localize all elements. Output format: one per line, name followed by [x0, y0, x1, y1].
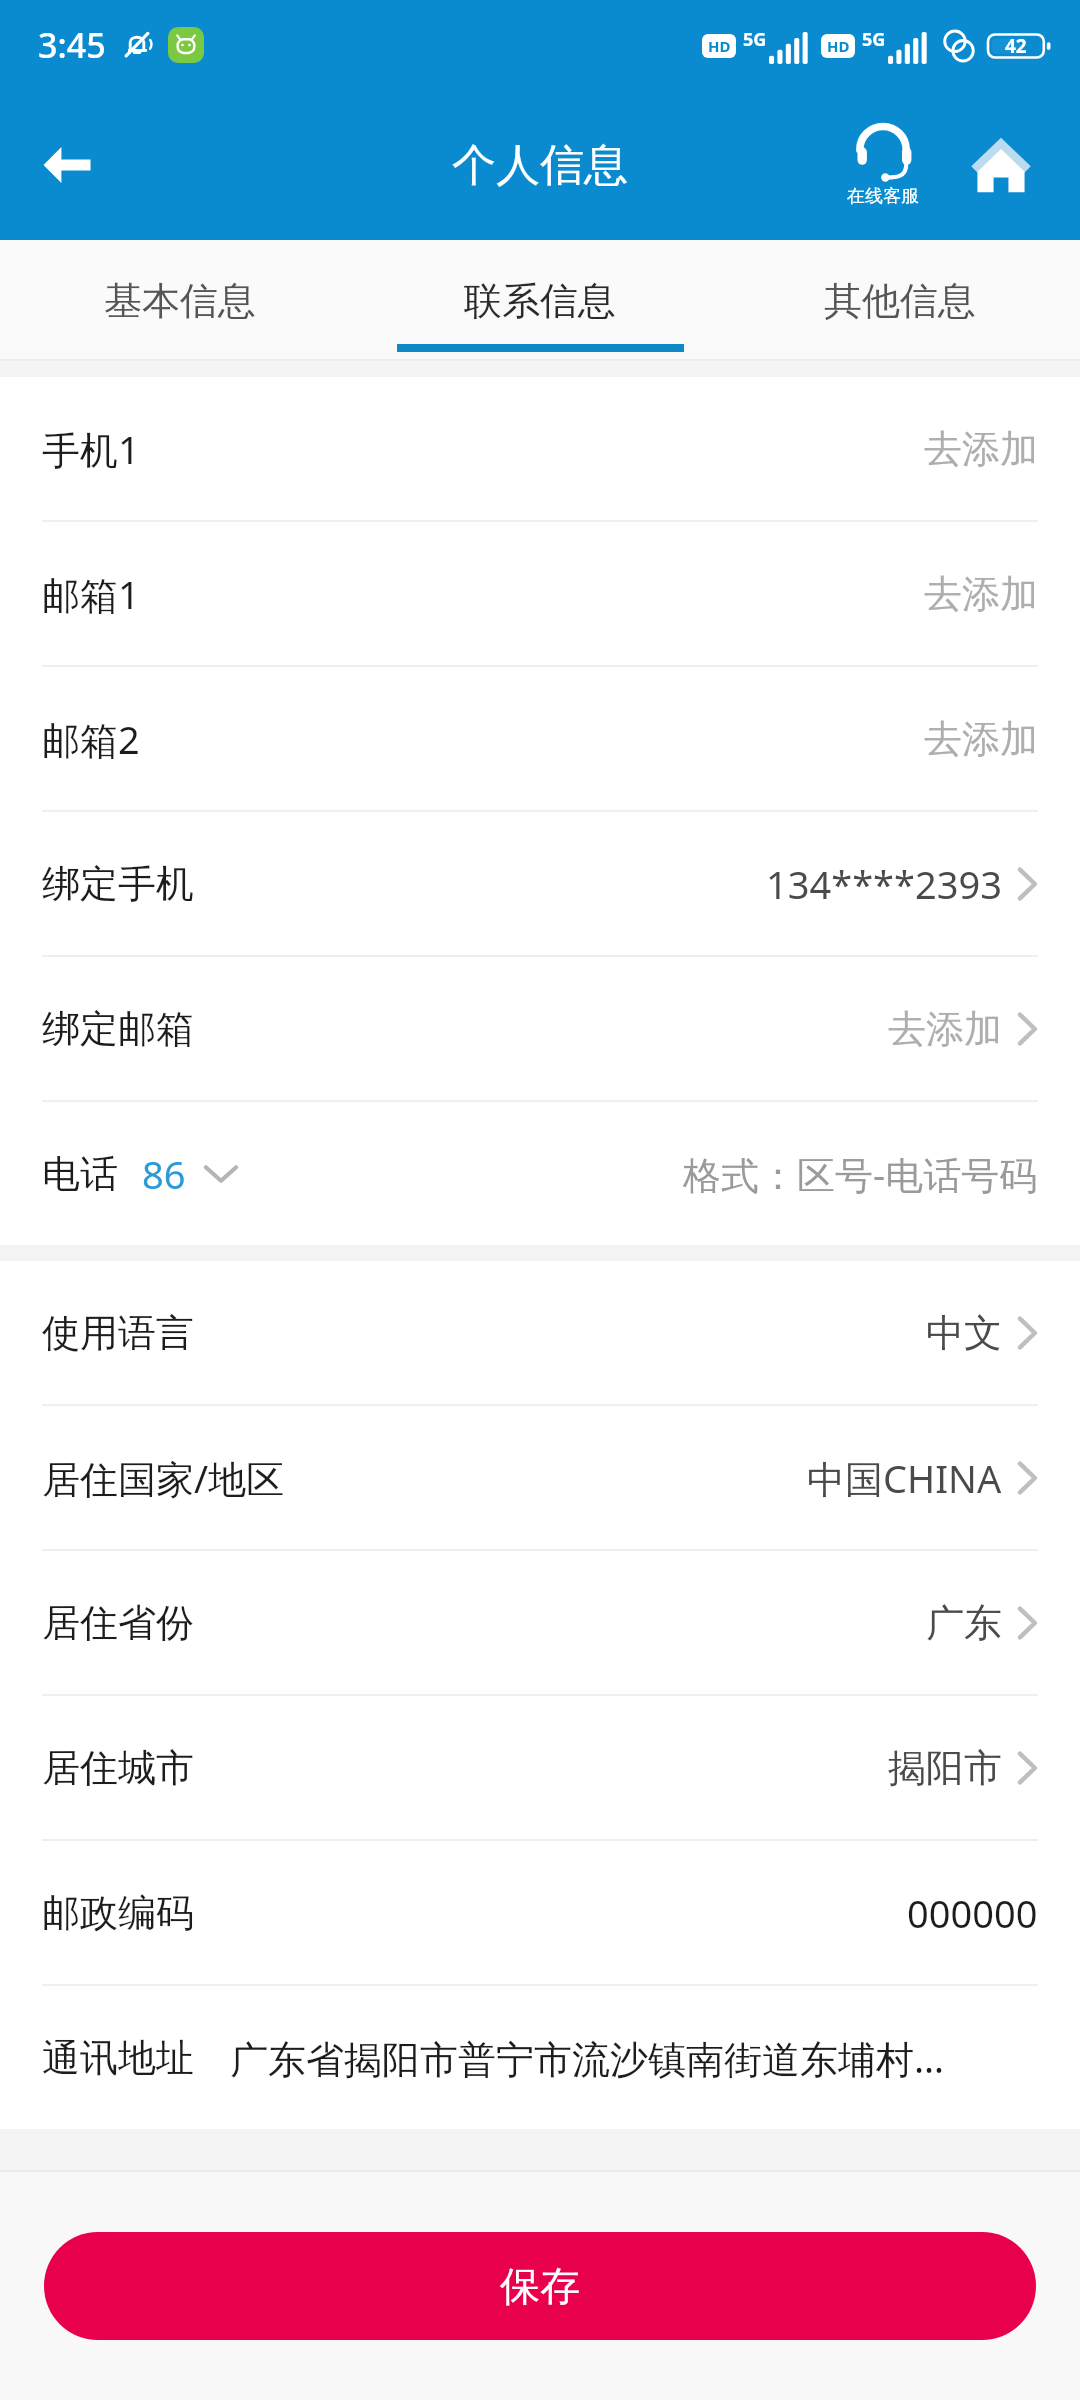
- staticText: 3:45: [38, 22, 106, 68]
- staticText: 保存: [500, 2261, 580, 2311]
- staticText: 揭阳市: [888, 1744, 1002, 1792]
- staticText: HD: [708, 36, 731, 56]
- button[interactable]: 绑定邮箱: [0, 957, 1080, 1100]
- staticText: 居住城市: [42, 1744, 194, 1792]
- staticText: 中文: [926, 1309, 1002, 1357]
- button[interactable]: 在线客服: [828, 100, 938, 230]
- staticText: 中国CHINA: [807, 1452, 1002, 1504]
- staticText: 通讯地址: [42, 2034, 194, 2082]
- button[interactable]: 邮政编码: [0, 1841, 1080, 1984]
- button[interactable]: 邮箱1: [0, 522, 1080, 665]
- button[interactable]: 电话: [0, 1102, 1080, 1245]
- staticText: 000000: [907, 1887, 1038, 1939]
- staticText: 使用语言: [42, 1309, 194, 1357]
- button[interactable]: 联系信息: [360, 240, 720, 361]
- staticText: 在线客服: [847, 185, 919, 208]
- staticText: 去添加: [924, 715, 1038, 763]
- staticText: 居住国家/地区: [42, 1452, 285, 1504]
- staticText: 绑定邮箱: [42, 1005, 194, 1053]
- button[interactable]: 保存: [44, 2232, 1036, 2340]
- button[interactable]: 使用语言: [0, 1261, 1080, 1404]
- staticText: 其他信息: [824, 277, 976, 325]
- staticText: 134****2393: [766, 858, 1002, 910]
- staticText: 去添加: [924, 570, 1038, 618]
- staticText: 手机1: [42, 423, 140, 475]
- staticText: 电话: [42, 1150, 118, 1198]
- staticText: 广东: [926, 1599, 1002, 1647]
- staticText: 联系信息: [464, 277, 616, 325]
- staticText: 去添加: [888, 1005, 1002, 1053]
- staticText: 去添加: [924, 425, 1038, 473]
- button[interactable]: 手机1: [0, 377, 1080, 520]
- button[interactable]: 绑定手机: [0, 812, 1080, 955]
- staticText: 邮箱2: [42, 713, 140, 765]
- staticText: 基本信息: [104, 277, 256, 325]
- staticText: 绑定手机: [42, 860, 194, 908]
- staticText: 5G: [862, 27, 886, 52]
- button[interactable]: 基本信息: [0, 240, 360, 361]
- button[interactable]: 返回: [22, 120, 112, 210]
- staticText: 42: [1005, 33, 1027, 59]
- button[interactable]: 居住省份: [0, 1551, 1080, 1694]
- staticText: 86: [142, 1148, 186, 1200]
- button[interactable]: 首页: [946, 110, 1056, 220]
- staticText: HD: [827, 36, 850, 56]
- staticText: 格式：区号-电话号码: [683, 1148, 1038, 1200]
- button[interactable]: 通讯地址: [0, 1986, 1080, 2129]
- staticText: 居住省份: [42, 1599, 194, 1647]
- button[interactable]: 其他信息: [720, 240, 1080, 361]
- staticText: 5G: [743, 27, 767, 52]
- staticText: 邮政编码: [42, 1889, 194, 1937]
- button[interactable]: 邮箱2: [0, 667, 1080, 810]
- staticText: 个人信息: [452, 138, 628, 193]
- button[interactable]: 居住城市: [0, 1696, 1080, 1839]
- staticText: 广东省揭阳市普宁市流沙镇南街道东埔村…: [230, 2032, 945, 2084]
- button[interactable]: 居住国家/地区: [0, 1406, 1080, 1549]
- staticText: 邮箱1: [42, 568, 140, 620]
